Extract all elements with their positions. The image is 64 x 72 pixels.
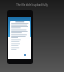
staticText: The file didn't upload fully <box>16 3 48 7</box>
